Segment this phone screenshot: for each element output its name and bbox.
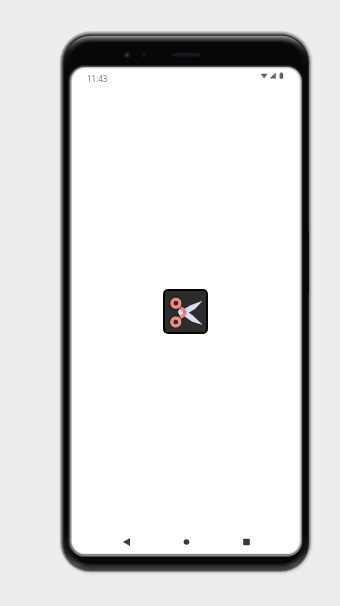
button[interactable]: Recent apps [233,529,259,555]
button[interactable]: Video trimmer app [163,289,208,334]
button[interactable]: Back [113,529,139,555]
button[interactable]: Power [301,232,311,294]
button[interactable]: Home [173,529,199,555]
staticText: 11:43 [87,73,108,84]
